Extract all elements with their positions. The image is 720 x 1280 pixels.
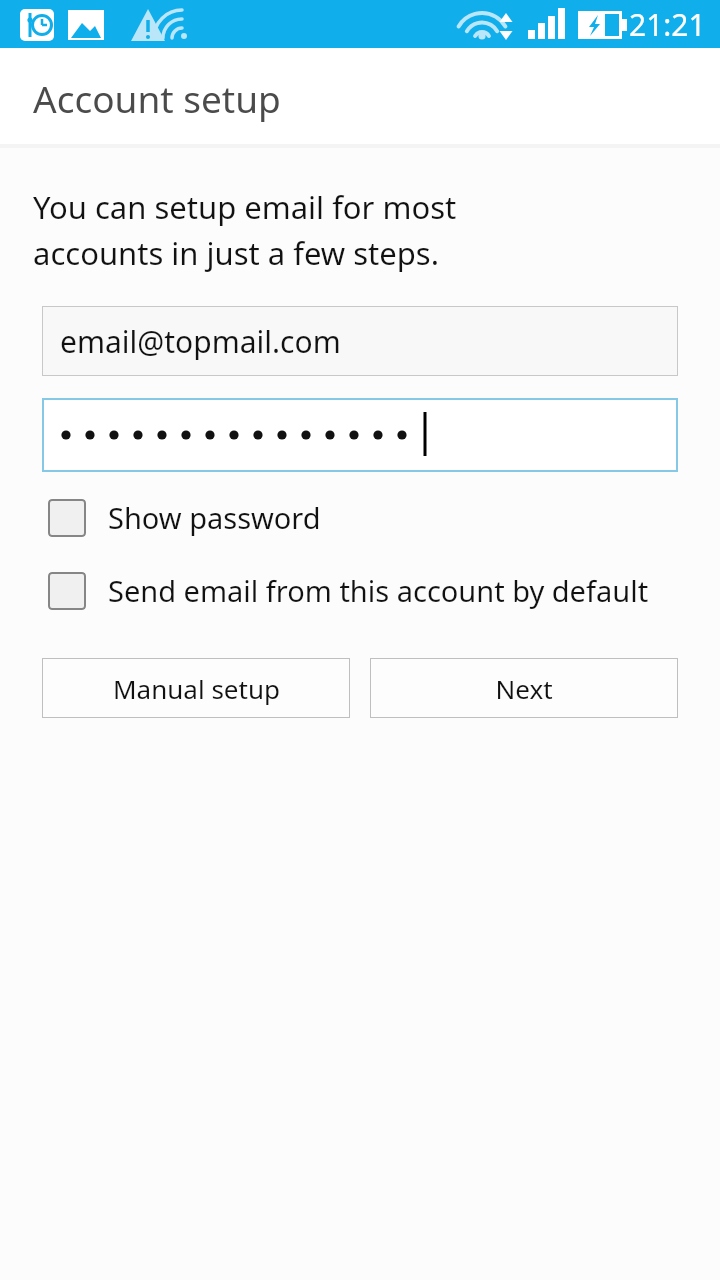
staticText: Account setup (33, 73, 281, 123)
staticText: email@topmail.com (60, 321, 341, 362)
staticText: Next (495, 671, 553, 706)
button[interactable]: Show password (48, 498, 708, 537)
staticText: You can setup email for most accounts in… (33, 186, 570, 274)
button[interactable]: Next (370, 658, 678, 718)
button[interactable]: email@topmail.com (42, 306, 678, 376)
button[interactable]: Send email from this account by default (48, 571, 708, 610)
staticText: Show password (108, 498, 321, 537)
staticText: 21:21 (629, 4, 706, 45)
staticText: Send email from this account by default (108, 571, 649, 610)
staticText: Manual setup (113, 671, 280, 706)
button[interactable]: Password (42, 398, 678, 472)
button[interactable]: Manual setup (42, 658, 350, 718)
